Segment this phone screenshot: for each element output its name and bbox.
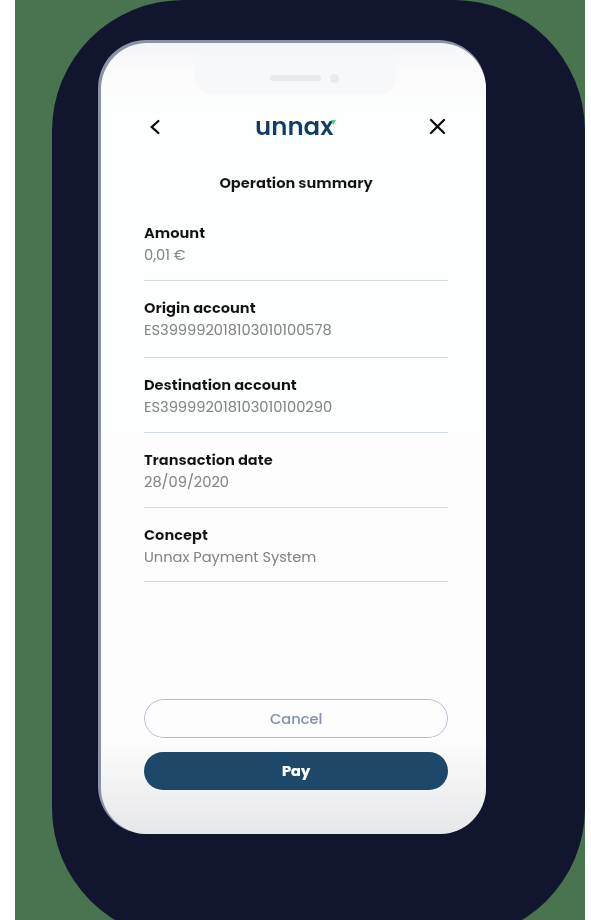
staticText: Amount (144, 223, 206, 243)
staticText: Operation summary (144, 173, 448, 193)
staticText: 28/09/2020 (144, 472, 229, 492)
staticText: ES399992018103010100290 (144, 397, 333, 417)
button[interactable]: Cancel (144, 699, 448, 738)
button[interactable]: Close (419, 108, 455, 144)
staticText: 0,01 € (144, 245, 186, 265)
staticText: Transaction date (144, 450, 273, 470)
button[interactable]: Back (137, 109, 173, 145)
staticText: Cancel (270, 709, 323, 729)
staticText: ES399992018103010100578 (144, 320, 332, 340)
staticText: Unnax Payment System (144, 547, 317, 567)
staticText: Concept (144, 525, 208, 545)
staticText: Pay (282, 761, 311, 781)
staticText: unnax (255, 109, 334, 143)
button[interactable]: Pay (144, 752, 448, 790)
staticText: Origin account (144, 298, 256, 318)
staticText: Destination account (144, 375, 297, 395)
